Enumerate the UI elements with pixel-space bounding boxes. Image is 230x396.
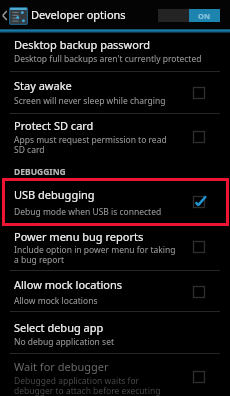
staticText: Allow mock locations	[14, 277, 123, 292]
staticText: Debugged application waits for debugger …	[14, 375, 161, 396]
staticText: Debug mode when USB is connected	[14, 206, 162, 218]
button[interactable]: Protect SD card	[0, 114, 230, 160]
button[interactable]: Unchecked	[193, 131, 205, 143]
staticText: Power menu bug reports	[14, 229, 144, 244]
staticText: ON	[198, 11, 211, 21]
staticText: Desktop backup password	[14, 37, 151, 52]
button[interactable]: Unchecked	[193, 371, 205, 383]
staticText: Select debug app	[14, 320, 104, 335]
button[interactable]: Unchecked	[193, 286, 205, 298]
button[interactable]: Power menu bug reports	[0, 226, 230, 270]
staticText: USB debugging	[14, 187, 95, 202]
button[interactable]: Desktop backup password	[0, 33, 230, 71]
button[interactable]: Allow mock locations	[0, 271, 230, 311]
button[interactable]: Unchecked	[193, 241, 205, 253]
staticText: Desktop full backups aren't currently pr…	[14, 53, 202, 65]
button[interactable]: Select debug app	[0, 312, 230, 353]
button[interactable]: Stay awake	[0, 72, 230, 113]
button[interactable]: Checked	[193, 196, 205, 208]
staticText: Protect SD card	[14, 118, 94, 133]
staticText: Stay awake	[14, 78, 72, 93]
staticText: Include option in power menu for taking …	[14, 244, 176, 266]
button[interactable]: Unchecked	[193, 87, 205, 99]
button[interactable]: Navigate up	[0, 0, 30, 30]
staticText: DEBUGGING	[14, 166, 66, 178]
staticText: No debug application set	[14, 336, 115, 348]
staticText: Apps must request permission to read SD …	[14, 134, 167, 156]
staticText: Wait for debugger	[14, 359, 109, 374]
staticText: Screen will never sleep while charging	[14, 95, 166, 107]
button[interactable]: USB debugging	[0, 179, 230, 224]
button[interactable]: ON	[158, 9, 220, 22]
button[interactable]: Wait for debugger	[0, 354, 230, 396]
staticText: Allow mock locations	[14, 295, 98, 307]
staticText: Developer options	[31, 7, 126, 22]
